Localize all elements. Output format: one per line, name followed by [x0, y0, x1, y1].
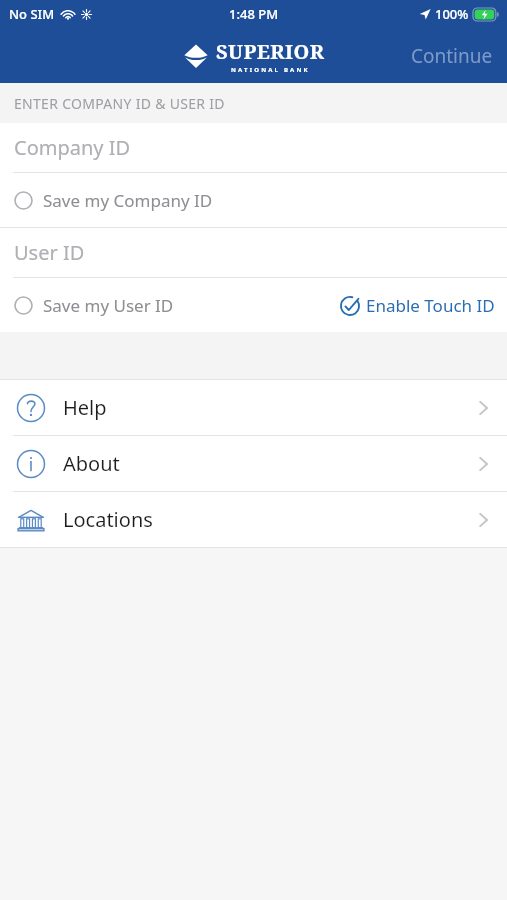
staticText: Company ID	[14, 134, 131, 161]
button[interactable]: Enable Touch ID	[330, 286, 507, 325]
staticText: Help	[63, 394, 478, 421]
button[interactable]: Continue	[397, 33, 507, 79]
staticText: Locations	[63, 506, 478, 533]
button[interactable]: Help	[0, 380, 507, 435]
staticText: NATIONAL BANK	[231, 66, 310, 74]
staticText: Enable Touch ID	[366, 294, 495, 317]
staticText: Continue	[411, 43, 493, 69]
button[interactable]: Save my Company ID	[0, 181, 223, 220]
staticText: Save my Company ID	[43, 189, 213, 212]
staticText: About	[63, 450, 478, 477]
staticText: SUPERIOR	[216, 38, 325, 65]
staticText: 100%	[435, 5, 469, 23]
button[interactable]: Locations	[0, 492, 507, 547]
staticText: User ID	[14, 239, 85, 266]
staticText: 1:48 PM	[229, 5, 279, 23]
staticText: No SIM	[9, 5, 55, 23]
staticText: ENTER COMPANY ID & USER ID	[14, 94, 225, 113]
button[interactable]: User ID	[0, 228, 507, 277]
button[interactable]: Save my User ID	[0, 286, 184, 325]
button[interactable]: About	[0, 436, 507, 491]
staticText: Save my User ID	[43, 294, 174, 317]
button[interactable]: Company ID	[0, 123, 507, 172]
